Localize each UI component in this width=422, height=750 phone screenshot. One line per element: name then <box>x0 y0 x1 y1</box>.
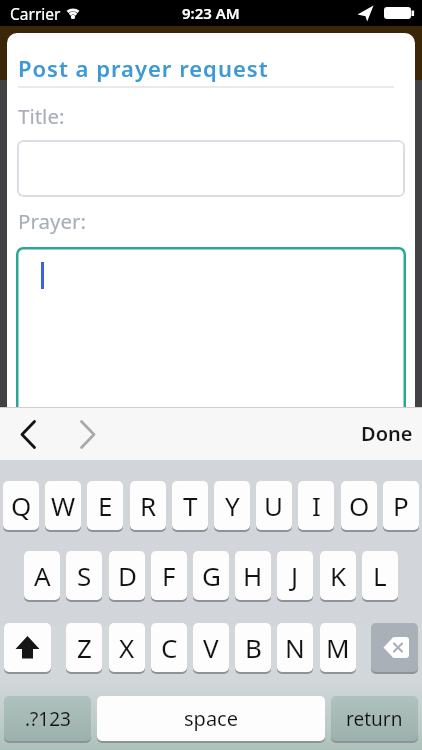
button[interactable]: N <box>277 623 313 672</box>
staticText: D <box>118 558 137 593</box>
button[interactable]: F <box>151 551 187 600</box>
staticText: B <box>245 630 262 665</box>
staticText: space <box>184 705 238 732</box>
button[interactable]: O <box>341 481 377 530</box>
staticText: R <box>140 488 157 523</box>
staticText: C <box>161 630 178 665</box>
button[interactable]: E <box>87 481 123 530</box>
staticText: F <box>162 558 176 593</box>
button[interactable]: I <box>298 481 334 530</box>
button[interactable]: space <box>97 696 325 741</box>
button[interactable]: W <box>45 481 81 530</box>
staticText: Post a prayer request <box>18 53 269 83</box>
button[interactable]: H <box>235 551 271 600</box>
button[interactable]: Done <box>352 407 422 460</box>
button[interactable]: K <box>320 551 356 600</box>
button[interactable] <box>70 415 106 453</box>
button[interactable]: .?123 <box>4 696 91 741</box>
button[interactable]: Post a prayer request <box>18 53 269 83</box>
staticText: G <box>202 558 221 593</box>
staticText: 9:23 AM <box>182 3 240 23</box>
button[interactable]: J <box>277 551 313 600</box>
staticText: M <box>326 630 350 665</box>
staticText: P <box>393 488 409 523</box>
staticText: A <box>34 558 51 593</box>
button[interactable] <box>17 140 405 197</box>
staticText: O <box>349 488 370 523</box>
button[interactable]: Y <box>214 481 250 530</box>
button[interactable]: L <box>362 551 398 600</box>
staticText: V <box>203 630 219 665</box>
staticText: L <box>373 558 387 593</box>
staticText: N <box>285 630 305 665</box>
staticText: K <box>330 558 347 593</box>
button[interactable]: Q <box>3 481 39 530</box>
staticText: W <box>51 488 76 523</box>
button[interactable] <box>4 623 51 672</box>
staticText: Carrier <box>10 3 61 24</box>
button[interactable] <box>16 247 406 407</box>
staticText: Z <box>77 630 92 665</box>
staticText: X <box>119 630 135 665</box>
staticText: .?123 <box>25 706 71 732</box>
button[interactable] <box>12 415 48 453</box>
staticText: Y <box>225 488 240 523</box>
button[interactable]: B <box>235 623 271 672</box>
button[interactable]: S <box>66 551 102 600</box>
button[interactable]: C <box>151 623 187 672</box>
staticText: U <box>264 488 284 523</box>
staticText: I <box>312 488 321 523</box>
staticText: Prayer: <box>18 207 86 235</box>
button[interactable]: R <box>130 481 166 530</box>
button[interactable]: M <box>320 623 356 672</box>
button[interactable]: U <box>256 481 292 530</box>
staticText: return <box>346 706 403 732</box>
button[interactable]: A <box>24 551 60 600</box>
staticText: S <box>77 558 92 593</box>
button[interactable]: Z <box>66 623 102 672</box>
button[interactable] <box>371 623 418 672</box>
button[interactable]: P <box>383 481 419 530</box>
staticText: Title: <box>18 102 65 130</box>
staticText: Q <box>11 488 32 523</box>
button[interactable]: G <box>193 551 229 600</box>
staticText: Done <box>361 420 413 447</box>
staticText: J <box>291 558 299 593</box>
button[interactable]: T <box>172 481 208 530</box>
staticText: H <box>243 558 263 593</box>
staticText: T <box>183 488 198 523</box>
button[interactable]: V <box>193 623 229 672</box>
button[interactable]: return <box>331 696 418 741</box>
button[interactable]: D <box>109 551 145 600</box>
button[interactable]: X <box>109 623 145 672</box>
staticText: E <box>98 488 113 523</box>
